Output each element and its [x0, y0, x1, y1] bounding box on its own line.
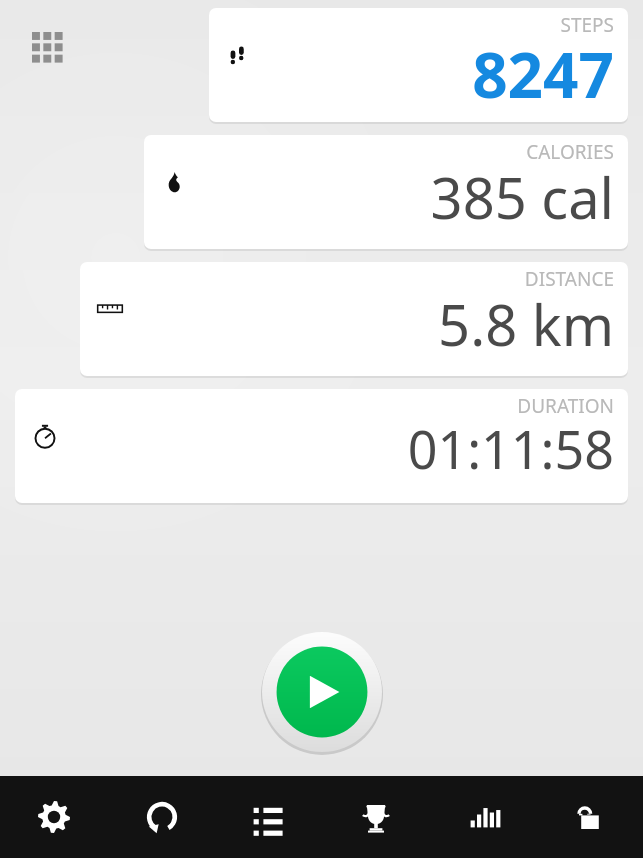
button[interactable]: History [215, 776, 322, 858]
button[interactable]: Achievements [322, 776, 429, 858]
button[interactable]: Apps [25, 25, 73, 73]
button[interactable]: CALORIES [144, 135, 628, 249]
button[interactable]: Settings [0, 776, 108, 858]
staticText: 01:11:58 [407, 413, 614, 484]
button[interactable]: Reset [108, 776, 215, 858]
staticText: CALORIES [526, 139, 614, 165]
staticText: DISTANCE [524, 266, 614, 292]
staticText: 8247 [472, 32, 614, 116]
button[interactable]: STEPS [209, 8, 628, 122]
staticText: 5.8 km [438, 286, 614, 362]
button[interactable]: DISTANCE [80, 262, 628, 376]
button[interactable]: Lock [536, 776, 643, 858]
button[interactable]: Start workout [261, 631, 383, 753]
button[interactable]: DURATION [15, 389, 628, 503]
button[interactable]: Statistics [429, 776, 536, 858]
staticText: DURATION [517, 393, 614, 419]
staticText: 385 cal [430, 159, 614, 235]
staticText: STEPS [560, 12, 614, 38]
